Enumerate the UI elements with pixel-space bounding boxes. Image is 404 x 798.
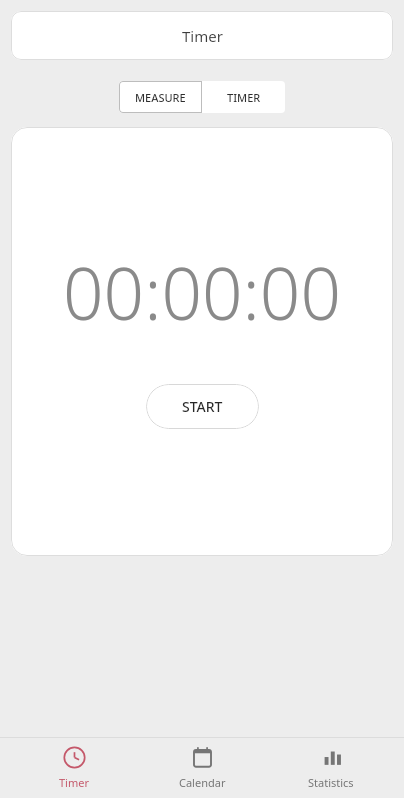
staticText: MEASURE	[135, 90, 186, 105]
staticText: START	[182, 397, 223, 416]
other: Timer	[63, 746, 86, 769]
button[interactable]: START	[146, 384, 259, 429]
other: Calendar	[191, 746, 214, 769]
button[interactable]: MEASURE	[119, 81, 202, 113]
button[interactable]: Timer	[19, 737, 129, 798]
button[interactable]: Calendar	[147, 737, 257, 798]
staticText: Timer	[59, 775, 89, 790]
button[interactable]: Timer	[11, 11, 393, 60]
other: Statistics	[320, 746, 343, 769]
button[interactable]: Statistics	[276, 737, 386, 798]
staticText: Timer	[182, 26, 223, 46]
staticText: 00:00:00	[63, 244, 341, 341]
staticText: Calendar	[179, 775, 226, 790]
staticText: Statistics	[308, 775, 354, 790]
button[interactable]: TIMER	[202, 81, 285, 113]
staticText: TIMER	[227, 90, 261, 105]
